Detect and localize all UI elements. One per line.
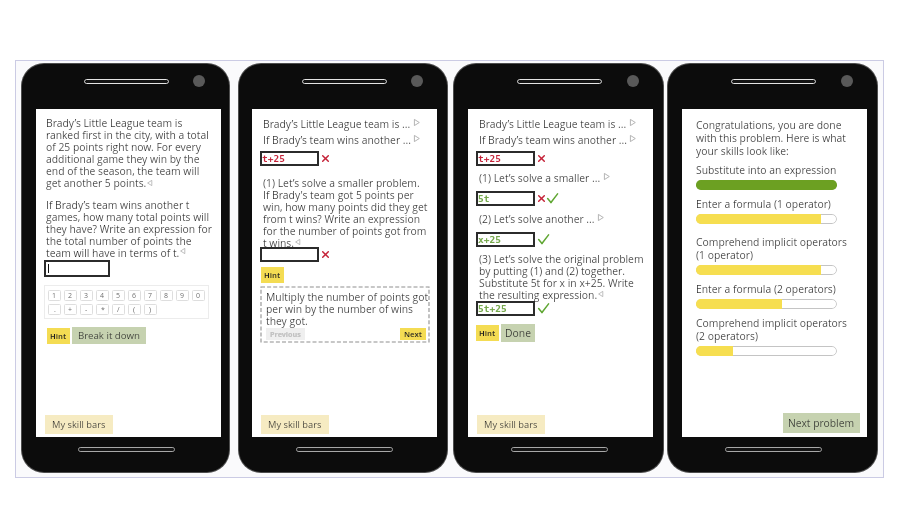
- staticText: (3) Let’s solve the original problem by …: [479, 252, 644, 302]
- button[interactable]: t+25: [476, 151, 535, 166]
- button[interactable]: If Brady’s team wins another ...: [479, 133, 628, 147]
- staticText: Brady’s Little League team is ...: [263, 117, 411, 131]
- button[interactable]: 5t: [476, 191, 535, 206]
- staticText: Comprehend implicit operators (2 operato…: [696, 316, 847, 343]
- staticText: 2: [68, 291, 73, 301]
- button[interactable]: Brady’s Little League team is ...: [263, 117, 411, 131]
- staticText: 7: [148, 291, 153, 301]
- staticText: 4: [100, 291, 105, 301]
- button[interactable]: 2: [64, 290, 77, 301]
- button[interactable]: Next problem: [783, 413, 860, 433]
- other: Incorrect: [538, 195, 545, 202]
- button[interactable]: Hint: [261, 267, 284, 283]
- button[interactable]: Brady’s Little League team is ...: [479, 117, 627, 131]
- button[interactable]: Read aloud: [295, 239, 301, 245]
- button[interactable]: Expand: [597, 214, 604, 221]
- other: Correct: [538, 303, 549, 314]
- button[interactable]: Done: [501, 324, 535, 342]
- staticText: 8: [164, 291, 169, 301]
- staticText: Done: [505, 326, 531, 340]
- button[interactable]: Next: [400, 328, 426, 340]
- staticText: Hint: [50, 331, 67, 341]
- staticText: .: [54, 305, 56, 315]
- button[interactable]: Expand: [629, 119, 636, 126]
- staticText: +: [68, 305, 73, 315]
- button[interactable]: 9: [176, 290, 189, 301]
- staticText: 0: [196, 291, 201, 301]
- staticText: Hint: [264, 270, 281, 280]
- button[interactable]: 4: [96, 290, 109, 301]
- staticText: Multiply the number of points got per wi…: [266, 290, 429, 328]
- button[interactable]: (1) Let’s solve a smaller ...: [479, 171, 601, 185]
- button[interactable]: +: [64, 304, 77, 315]
- other: Correct: [547, 193, 558, 204]
- button[interactable]: Expand: [629, 135, 636, 142]
- button[interactable]: 1: [48, 290, 61, 301]
- button[interactable]: Hint: [476, 325, 499, 341]
- staticText: Previous: [270, 329, 301, 339]
- staticText: Brady’s Little League team is ...: [479, 117, 627, 131]
- staticText: My skill bars: [52, 418, 106, 431]
- button[interactable]: *: [96, 304, 109, 315]
- button[interactable]: Expand: [603, 173, 610, 180]
- staticText: Hint: [479, 328, 496, 338]
- staticText: (2) Let’s solve another ...: [479, 212, 595, 226]
- staticText: 3: [84, 291, 89, 301]
- staticText: My skill bars: [484, 418, 538, 431]
- button[interactable]: If Brady’s team wins another ...: [263, 133, 412, 147]
- staticText: Next problem: [788, 416, 855, 430]
- button[interactable]: Break it down: [72, 327, 146, 344]
- button[interactable]: Read aloud: [180, 248, 186, 254]
- other: Incorrect: [322, 251, 329, 258]
- staticText: ): [149, 305, 152, 315]
- button[interactable]: .: [48, 304, 61, 315]
- button[interactable]: /: [112, 304, 125, 315]
- button[interactable]: [44, 260, 110, 277]
- button[interactable]: 6: [128, 290, 141, 301]
- staticText: /: [117, 305, 120, 315]
- button[interactable]: ): [144, 304, 157, 315]
- button[interactable]: My skill bars: [45, 415, 113, 434]
- staticText: My skill bars: [268, 418, 322, 431]
- button[interactable]: Hint: [47, 328, 70, 344]
- button[interactable]: 7: [144, 290, 157, 301]
- button[interactable]: Read aloud: [598, 291, 604, 297]
- staticText: If Brady’s team wins another ...: [263, 133, 412, 147]
- staticText: Enter a formula (1 operator): [696, 197, 831, 211]
- staticText: *: [101, 305, 105, 315]
- staticText: x+25: [478, 234, 501, 245]
- other: Incorrect: [322, 155, 329, 162]
- staticText: 5: [116, 291, 121, 301]
- other: Correct: [538, 234, 549, 245]
- staticText: (: [133, 305, 136, 315]
- button[interactable]: 3: [80, 290, 93, 301]
- button[interactable]: 5t+25: [476, 301, 535, 316]
- button[interactable]: t+25: [260, 151, 319, 166]
- button[interactable]: 0: [192, 290, 205, 301]
- button[interactable]: Read aloud: [147, 180, 153, 186]
- staticText: 9: [180, 291, 185, 301]
- button[interactable]: My skill bars: [261, 415, 329, 434]
- staticText: 5t+25: [478, 303, 507, 314]
- other: Incorrect: [538, 155, 545, 162]
- staticText: Brady’s Little League team is ranked fir…: [46, 116, 209, 190]
- staticText: t+25: [262, 153, 285, 164]
- button[interactable]: Expand: [413, 135, 420, 142]
- staticText: Substitute into an expression: [696, 163, 837, 177]
- staticText: (1) Let’s solve a smaller ...: [479, 171, 601, 185]
- button[interactable]: -: [80, 304, 93, 315]
- button[interactable]: (: [128, 304, 141, 315]
- staticText: Next: [404, 329, 422, 339]
- button[interactable]: Expand: [413, 119, 420, 126]
- button[interactable]: 8: [160, 290, 173, 301]
- staticText: 6: [132, 291, 137, 301]
- button[interactable]: x+25: [476, 232, 535, 247]
- staticText: Congratulations, you are done with this …: [696, 118, 846, 158]
- button[interactable]: My skill bars: [477, 415, 545, 434]
- staticText: 1: [52, 291, 57, 301]
- button[interactable]: [260, 247, 319, 262]
- button[interactable]: (2) Let’s solve another ...: [479, 212, 595, 226]
- staticText: (1) Let’s solve a smaller problem. If Br…: [263, 176, 428, 250]
- button[interactable]: 5: [112, 290, 125, 301]
- button[interactable]: Previous: [266, 328, 305, 340]
